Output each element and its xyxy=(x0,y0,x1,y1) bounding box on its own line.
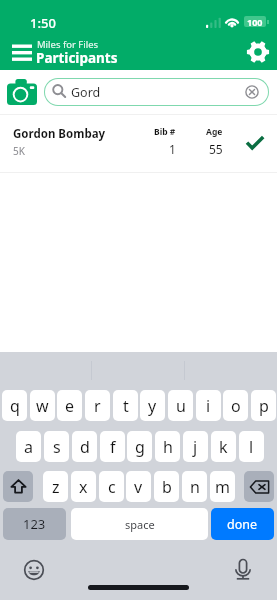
staticText: n xyxy=(190,476,200,498)
button[interactable]: e xyxy=(57,390,82,421)
staticText: Gord xyxy=(71,84,101,101)
staticText: q xyxy=(10,395,20,417)
button[interactable]: u xyxy=(168,390,193,421)
staticText: g xyxy=(135,436,145,458)
button[interactable]: Camera xyxy=(7,79,37,105)
staticText: s xyxy=(53,436,61,458)
button[interactable]: w xyxy=(30,390,55,421)
button[interactable]: Shift xyxy=(3,471,33,502)
staticText: Gordon Bombay xyxy=(13,126,106,142)
staticText: j xyxy=(193,436,198,458)
button[interactable]: d xyxy=(72,431,97,462)
button[interactable]: 123 xyxy=(3,508,66,540)
staticText: space xyxy=(125,517,155,532)
staticText: e xyxy=(65,395,75,417)
staticText: done xyxy=(227,516,258,533)
staticText: z xyxy=(52,476,60,498)
button[interactable]: j xyxy=(183,431,208,462)
staticText: Bib # xyxy=(154,126,176,138)
button[interactable]: Clear search xyxy=(245,85,259,99)
staticText: d xyxy=(80,436,90,458)
staticText: r xyxy=(94,395,101,417)
button[interactable]: s xyxy=(44,431,69,462)
button[interactable]: Gord xyxy=(44,78,269,106)
staticText: p xyxy=(259,395,269,417)
button[interactable]: l xyxy=(239,431,264,462)
staticText: t xyxy=(123,395,129,417)
button[interactable]: i xyxy=(196,390,221,421)
button[interactable]: o xyxy=(223,390,248,421)
button[interactable]: m xyxy=(210,471,235,502)
staticText: u xyxy=(176,395,186,417)
staticText: k xyxy=(219,436,228,458)
button[interactable]: v xyxy=(126,471,151,502)
button[interactable]: g xyxy=(127,431,152,462)
staticText: o xyxy=(231,395,241,417)
staticText: a xyxy=(24,436,33,458)
button[interactable]: a xyxy=(16,431,41,462)
staticText: 55 xyxy=(209,141,223,157)
staticText: c xyxy=(108,476,116,498)
staticText: l xyxy=(249,436,254,458)
button[interactable]: Emoji keyboard xyxy=(23,559,45,581)
button[interactable]: n xyxy=(182,471,207,502)
button[interactable]: done xyxy=(211,508,274,540)
button[interactable]: b xyxy=(154,471,179,502)
staticText: Miles for Files xyxy=(37,38,99,51)
staticText: h xyxy=(163,436,173,458)
staticText: y xyxy=(148,395,157,417)
button[interactable]: Dictation xyxy=(232,557,254,583)
staticText: x xyxy=(79,476,88,498)
button[interactable]: c xyxy=(99,471,124,502)
staticText: b xyxy=(162,476,172,498)
button[interactable]: y xyxy=(140,390,165,421)
button[interactable]: p xyxy=(251,390,276,421)
button[interactable]: Settings xyxy=(246,40,270,64)
button[interactable]: q xyxy=(2,390,27,421)
button[interactable]: r xyxy=(85,390,110,421)
staticText: w xyxy=(36,395,49,417)
button[interactable]: Backspace xyxy=(244,471,274,502)
staticText: v xyxy=(134,476,143,498)
staticText: i xyxy=(206,395,211,417)
button[interactable]: z xyxy=(43,471,68,502)
button[interactable]: k xyxy=(211,431,236,462)
button[interactable]: Gordon Bombay xyxy=(0,115,277,172)
button[interactable]: t xyxy=(113,390,138,421)
staticText: 123 xyxy=(23,515,46,533)
button[interactable]: x xyxy=(71,471,96,502)
staticText: 100 xyxy=(247,16,263,27)
staticText: f xyxy=(110,436,116,458)
staticText: 5K xyxy=(13,144,25,158)
button[interactable]: Menu xyxy=(8,41,34,61)
staticText: m xyxy=(215,476,230,498)
button[interactable]: f xyxy=(100,431,125,462)
button[interactable]: h xyxy=(155,431,180,462)
staticText: 1:50 xyxy=(30,14,56,32)
staticText: 1 xyxy=(169,141,176,157)
staticText: Age xyxy=(206,126,223,138)
button[interactable]: space xyxy=(71,508,208,540)
staticText: Participants xyxy=(36,49,118,67)
